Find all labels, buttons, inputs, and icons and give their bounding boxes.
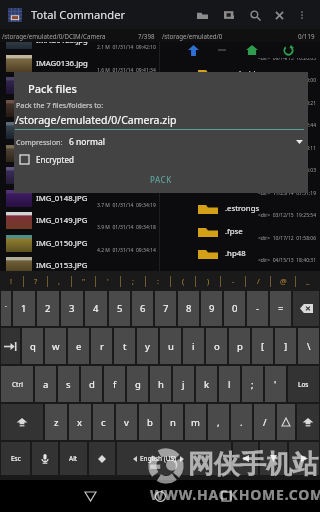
button[interactable]: New folder [190,3,214,27]
button[interactable]: r [91,328,112,364]
button[interactable]: d [81,366,102,402]
button[interactable]: Close [267,3,291,27]
button[interactable]: = [270,291,291,326]
button[interactable]: - [247,291,268,326]
button[interactable]: q [22,328,43,364]
button[interactable]: ] [275,328,296,364]
button[interactable]: Shift [297,404,319,440]
button[interactable]: .bluetooth [160,85,320,108]
button[interactable]: w [45,328,66,364]
button[interactable]: .hp48 [160,242,320,265]
button[interactable]: m [185,404,206,440]
button[interactable]: / [254,404,275,440]
button[interactable]: Esc [1,442,30,475]
button[interactable]: English (US) [117,442,231,475]
button[interactable]: 3 [61,291,83,326]
button[interactable]: Ctrl [1,366,33,402]
button[interactable]: /storage/emulated/0 [160,29,320,42]
button[interactable]: Back [72,480,108,512]
button[interactable]: IMG_0147b.JPG [0,164,159,187]
button[interactable]: /storage/emulated/0/DCIM/Camera [0,29,160,42]
button[interactable]: 4 [85,291,107,326]
button[interactable]: i [183,328,204,364]
button[interactable]: IMG_0146.JPG [0,119,159,142]
button[interactable]: Voice input [32,442,58,475]
button[interactable]: .DataStorage [160,107,320,130]
button[interactable]: IMG_0153.JPG [0,254,159,271]
button[interactable]: Recent apps [208,480,244,512]
button[interactable]: Los [288,366,319,402]
button[interactable]: f [104,366,125,402]
button[interactable]: Refresh [280,42,296,58]
button[interactable]: p [229,328,250,364]
button[interactable]: Home [142,480,178,512]
button[interactable]: o [206,328,227,364]
button[interactable]: IMG_0141.JPG [0,74,159,97]
button[interactable]: . [231,404,252,440]
button[interactable]: .android_secure [160,62,320,85]
button[interactable]: Alt [60,442,87,475]
button[interactable]: \ [298,328,319,364]
button[interactable]: y [137,328,158,364]
button[interactable]: z [45,404,67,440]
button[interactable]: IMG_0145.JPG [0,97,159,120]
button[interactable]: Root folder [214,42,230,58]
button[interactable]: 1 [13,291,35,326]
button[interactable]: .fpse [160,220,320,243]
button[interactable]: 7 [155,291,176,326]
button[interactable]: .dsemu [160,152,320,175]
button[interactable]: b [139,404,160,440]
button[interactable]: l [219,366,240,402]
button[interactable]: IMG_0150.JPG [0,232,159,255]
button[interactable]: Left [233,442,258,475]
button[interactable]: [ [252,328,273,364]
button[interactable]: IMG_0149.JPG [0,209,159,232]
button[interactable]: IMG_0148.JPG [0,187,159,210]
button[interactable]: Down [260,442,287,475]
button[interactable]: More options [292,5,312,25]
button[interactable]: k [196,366,217,402]
button[interactable]: IMAG0136.jpg [0,52,159,75]
button[interactable]: e [68,328,89,364]
button[interactable]: Compression: [14,134,308,150]
button[interactable]: Tab [1,328,20,364]
button[interactable]: Select files [217,3,241,27]
button[interactable]: Home folder [244,42,260,58]
button[interactable]: 9 [201,291,222,326]
button[interactable]: , [208,404,229,440]
button[interactable]: Symbols [277,404,295,440]
button[interactable]: j [173,366,194,402]
button[interactable]: .estrongs [160,197,320,220]
button[interactable]: n [162,404,183,440]
button[interactable]: c [93,404,114,440]
button[interactable]: 8 [178,291,199,326]
button[interactable]: g [127,366,148,402]
button[interactable]: Settings [89,442,115,475]
button[interactable]: .emulator [160,175,320,198]
button[interactable]: h [150,366,171,402]
button[interactable]: a [35,366,56,402]
button[interactable]: PACK [140,171,182,188]
button[interactable]: 5 [109,291,130,326]
button[interactable]: Right [289,442,319,475]
button[interactable]: 0 [224,291,245,326]
button[interactable]: Shift [1,404,43,440]
button[interactable]: v [116,404,137,440]
button[interactable]: IMAG0128.jpg [0,42,159,52]
button[interactable]: .downloadTemp [160,130,320,153]
button[interactable]: t [114,328,135,364]
button[interactable]: u [160,328,181,364]
button[interactable]: x [69,404,91,440]
button[interactable]: .aaa [160,58,320,63]
button[interactable]: IMG_0147.JPG [0,142,159,165]
button[interactable]: 6 [132,291,153,326]
button[interactable]: s [58,366,79,402]
button[interactable]: 2 [37,291,59,326]
button[interactable]: Search [243,3,267,27]
button[interactable]: Up one level [185,42,201,58]
button[interactable]: ' [265,366,286,402]
button[interactable]: ; [242,366,263,402]
button[interactable]: ` [1,291,11,326]
button[interactable]: Encrypted [20,152,74,166]
